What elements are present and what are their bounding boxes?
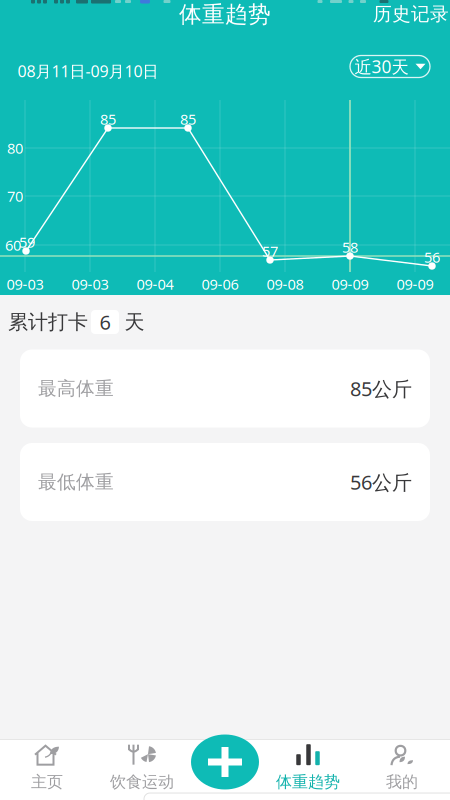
- staticText: 09-04: [136, 274, 173, 294]
- staticText: 85: [180, 109, 196, 129]
- staticText: 70: [7, 186, 23, 206]
- staticText: 饮食运动: [110, 772, 174, 792]
- staticText: 累计打卡: [8, 310, 88, 334]
- staticText: 60: [5, 235, 21, 255]
- staticText: 59: [19, 232, 35, 252]
- staticText: 历史记录: [373, 2, 449, 25]
- staticText: 体重趋势: [179, 1, 271, 28]
- button[interactable]: 历史记录: [371, 1, 450, 27]
- staticText: 09-06: [201, 274, 238, 294]
- staticText: 58: [342, 237, 358, 257]
- staticText: 09-03: [71, 274, 108, 294]
- staticText: 08月11日-09月10日: [17, 60, 158, 82]
- staticText: 09-09: [396, 274, 433, 294]
- staticText: 09-08: [266, 274, 303, 294]
- button[interactable]: 主页: [7, 742, 87, 794]
- staticText: 我的: [386, 772, 418, 792]
- button[interactable]: 记录: [190, 733, 260, 791]
- button[interactable]: 我的: [362, 742, 442, 794]
- staticText: 56公斤: [350, 469, 412, 495]
- staticText: 57: [262, 241, 278, 261]
- staticText: 6: [99, 309, 110, 335]
- button[interactable]: 体重趋势: [265, 742, 351, 794]
- staticText: 09-03: [6, 274, 43, 294]
- staticText: 最高体重: [38, 377, 114, 400]
- button[interactable]: 饮食运动: [99, 742, 185, 794]
- staticText: 09-09: [331, 274, 368, 294]
- staticText: 85: [100, 109, 116, 129]
- staticText: 56: [424, 247, 440, 267]
- staticText: 天: [124, 310, 144, 334]
- staticText: 体重趋势: [276, 772, 340, 792]
- button[interactable]: 近30天: [350, 55, 430, 77]
- staticText: 85公斤: [350, 375, 412, 402]
- staticText: 主页: [31, 772, 63, 792]
- staticText: 最低体重: [38, 470, 114, 493]
- staticText: 近30天: [354, 55, 408, 78]
- staticText: 80: [7, 138, 23, 158]
